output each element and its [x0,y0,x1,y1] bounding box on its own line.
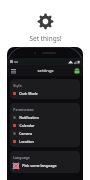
staticText: Calendar [19,123,35,128]
staticText: Notification [19,115,39,120]
staticText: Style [13,83,22,88]
button[interactable]: Pick some language [10,161,80,170]
staticText: Permissions [13,107,34,112]
button[interactable]: Account [73,67,80,74]
staticText: Location [19,139,34,144]
staticText: Language [13,155,30,160]
button[interactable]: Dark Mode [10,89,80,97]
staticText: Set things! [29,34,62,43]
button[interactable]: Camera [10,129,80,137]
other: Settings [38,14,53,29]
button[interactable]: Calendar [10,121,80,129]
button[interactable]: Menu [10,68,16,74]
staticText: settings [37,68,54,74]
button[interactable]: Location [10,137,80,145]
staticText: Pick some language [22,163,57,168]
staticText: Dark Mode [19,91,38,96]
staticText: Camera [19,131,32,136]
button[interactable]: Notification [10,113,80,121]
